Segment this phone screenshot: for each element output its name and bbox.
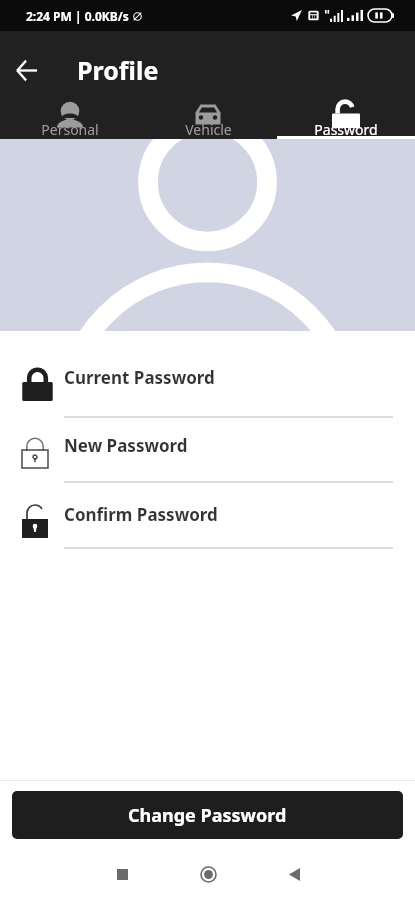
staticText: Change Password (128, 803, 287, 828)
staticText: Vehicle (185, 120, 232, 139)
button[interactable]: Back (6, 53, 47, 88)
staticText: New Password (64, 434, 188, 457)
staticText: Current Password (64, 366, 215, 389)
button[interactable]: Vehicle (139, 88, 277, 139)
staticText: Password (314, 120, 378, 139)
button[interactable]: Password (277, 88, 415, 139)
button[interactable]: Personal (0, 88, 139, 139)
staticText: Personal (41, 120, 99, 139)
button[interactable]: Confirm Password (0, 492, 415, 536)
button[interactable]: Recents (96, 848, 148, 900)
staticText: Profile (77, 53, 159, 87)
staticText: Confirm Password (64, 503, 218, 526)
button[interactable]: New Password (0, 423, 415, 467)
button[interactable]: Change Password (12, 791, 403, 839)
button[interactable]: Back (268, 848, 320, 900)
staticText: 2:24 PM | 0.0KB/s (26, 8, 129, 24)
button[interactable]: Home (182, 848, 234, 900)
button[interactable]: Current Password (0, 355, 415, 399)
